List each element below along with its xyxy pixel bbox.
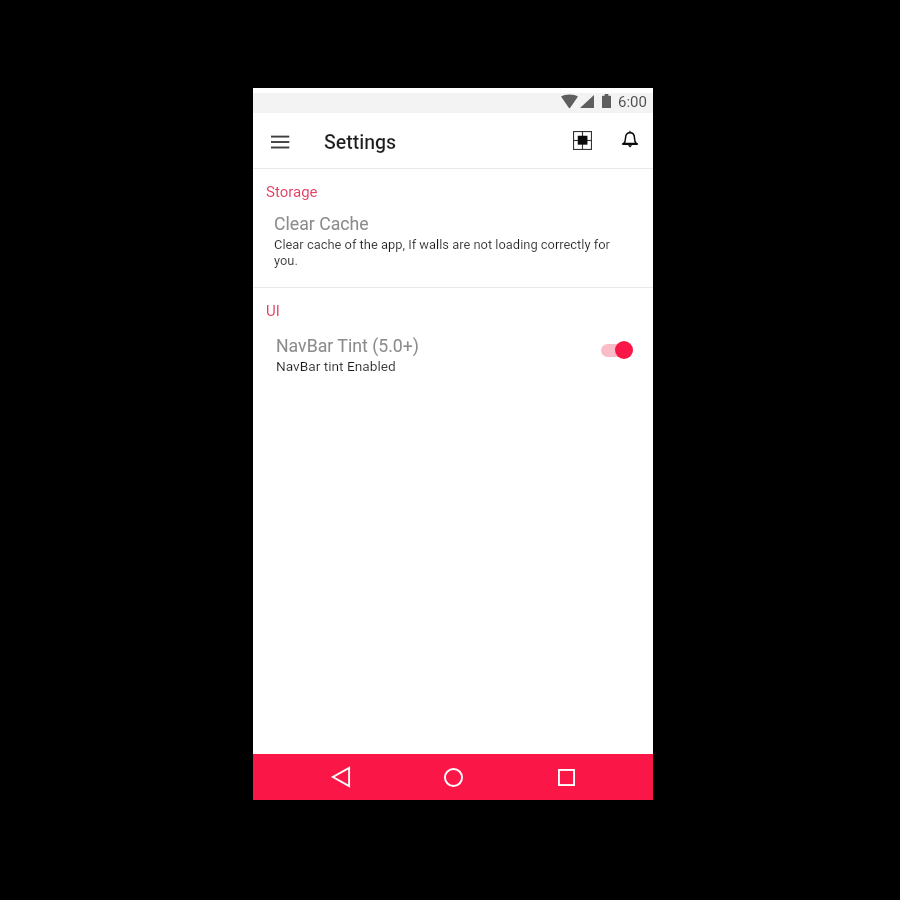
- button[interactable]: NavBar Tint (5.0+): [253, 320, 653, 374]
- staticText: 6:00: [618, 93, 647, 111]
- button[interactable]: Menu: [263, 118, 297, 162]
- button[interactable]: Home: [431, 755, 475, 799]
- staticText: Clear cache of the app, If walls are not…: [274, 237, 633, 268]
- staticText: Clear Cache: [274, 214, 369, 235]
- staticText: Storage: [266, 183, 318, 201]
- button[interactable]: Center focus: [560, 118, 604, 162]
- staticText: Settings: [324, 131, 397, 154]
- staticText: NavBar tint Enabled: [276, 358, 396, 374]
- button[interactable]: Recent apps: [544, 755, 588, 799]
- staticText: NavBar Tint (5.0+): [276, 336, 419, 357]
- button[interactable]: Notifications: [608, 118, 652, 162]
- button[interactable]: Clear Cache: [253, 201, 653, 268]
- button[interactable]: Back: [319, 755, 363, 799]
- staticText: UI: [266, 302, 280, 320]
